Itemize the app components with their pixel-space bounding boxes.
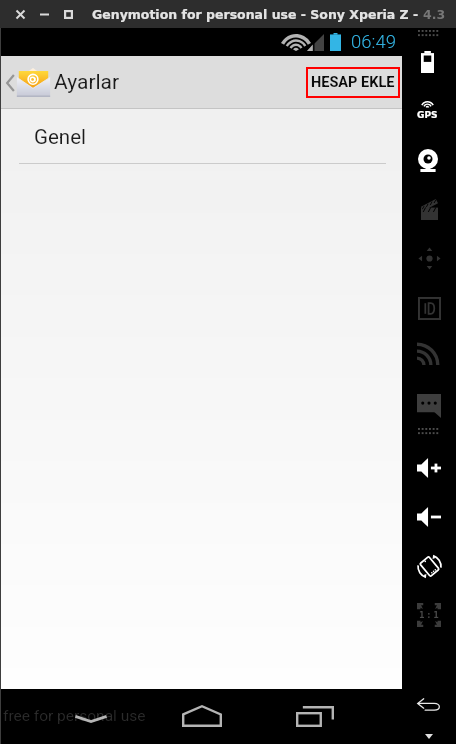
button[interactable]: Video recording xyxy=(410,190,448,228)
staticText: Genel xyxy=(34,125,87,149)
button[interactable]: Scale 1 to 1 xyxy=(410,596,448,634)
button[interactable]: Identifiers xyxy=(410,289,448,327)
button[interactable]: Camera xyxy=(409,141,447,179)
staticText: 1 : 1 xyxy=(419,611,439,620)
button[interactable]: HESAP EKLE xyxy=(306,67,400,98)
staticText: 06:49 xyxy=(351,31,396,53)
button[interactable]: Recent apps xyxy=(291,689,339,744)
button[interactable]: Network xyxy=(408,336,446,374)
staticText: 4.3 xyxy=(423,7,446,22)
button[interactable]: Back xyxy=(410,685,448,723)
button[interactable]: Volume down xyxy=(410,498,448,536)
staticText: Genymotion for personal use - Sony Xperi… xyxy=(92,7,423,22)
button[interactable]: Minimize window xyxy=(35,5,53,23)
button[interactable]: Maximize window xyxy=(59,5,77,23)
staticText: free for personal use xyxy=(3,707,146,725)
button[interactable]: Rotate screen xyxy=(410,547,448,585)
button[interactable]: Battery xyxy=(408,43,446,81)
button[interactable]: GPS xyxy=(408,91,446,129)
button[interactable]: Genel xyxy=(1,109,402,164)
staticText: Ayarlar xyxy=(54,70,120,95)
button[interactable]: Navigation pad xyxy=(410,239,448,277)
button[interactable]: Back xyxy=(67,689,115,744)
button[interactable]: Home xyxy=(178,689,226,744)
staticText: HESAP EKLE xyxy=(311,74,395,91)
button[interactable]: More options xyxy=(410,717,448,744)
button[interactable]: Volume up xyxy=(410,449,448,487)
button[interactable]: SMS xyxy=(410,387,448,425)
staticText: GPS xyxy=(417,110,438,120)
button[interactable]: Close window xyxy=(11,5,29,23)
button[interactable]: Ayarlar xyxy=(1,56,122,109)
